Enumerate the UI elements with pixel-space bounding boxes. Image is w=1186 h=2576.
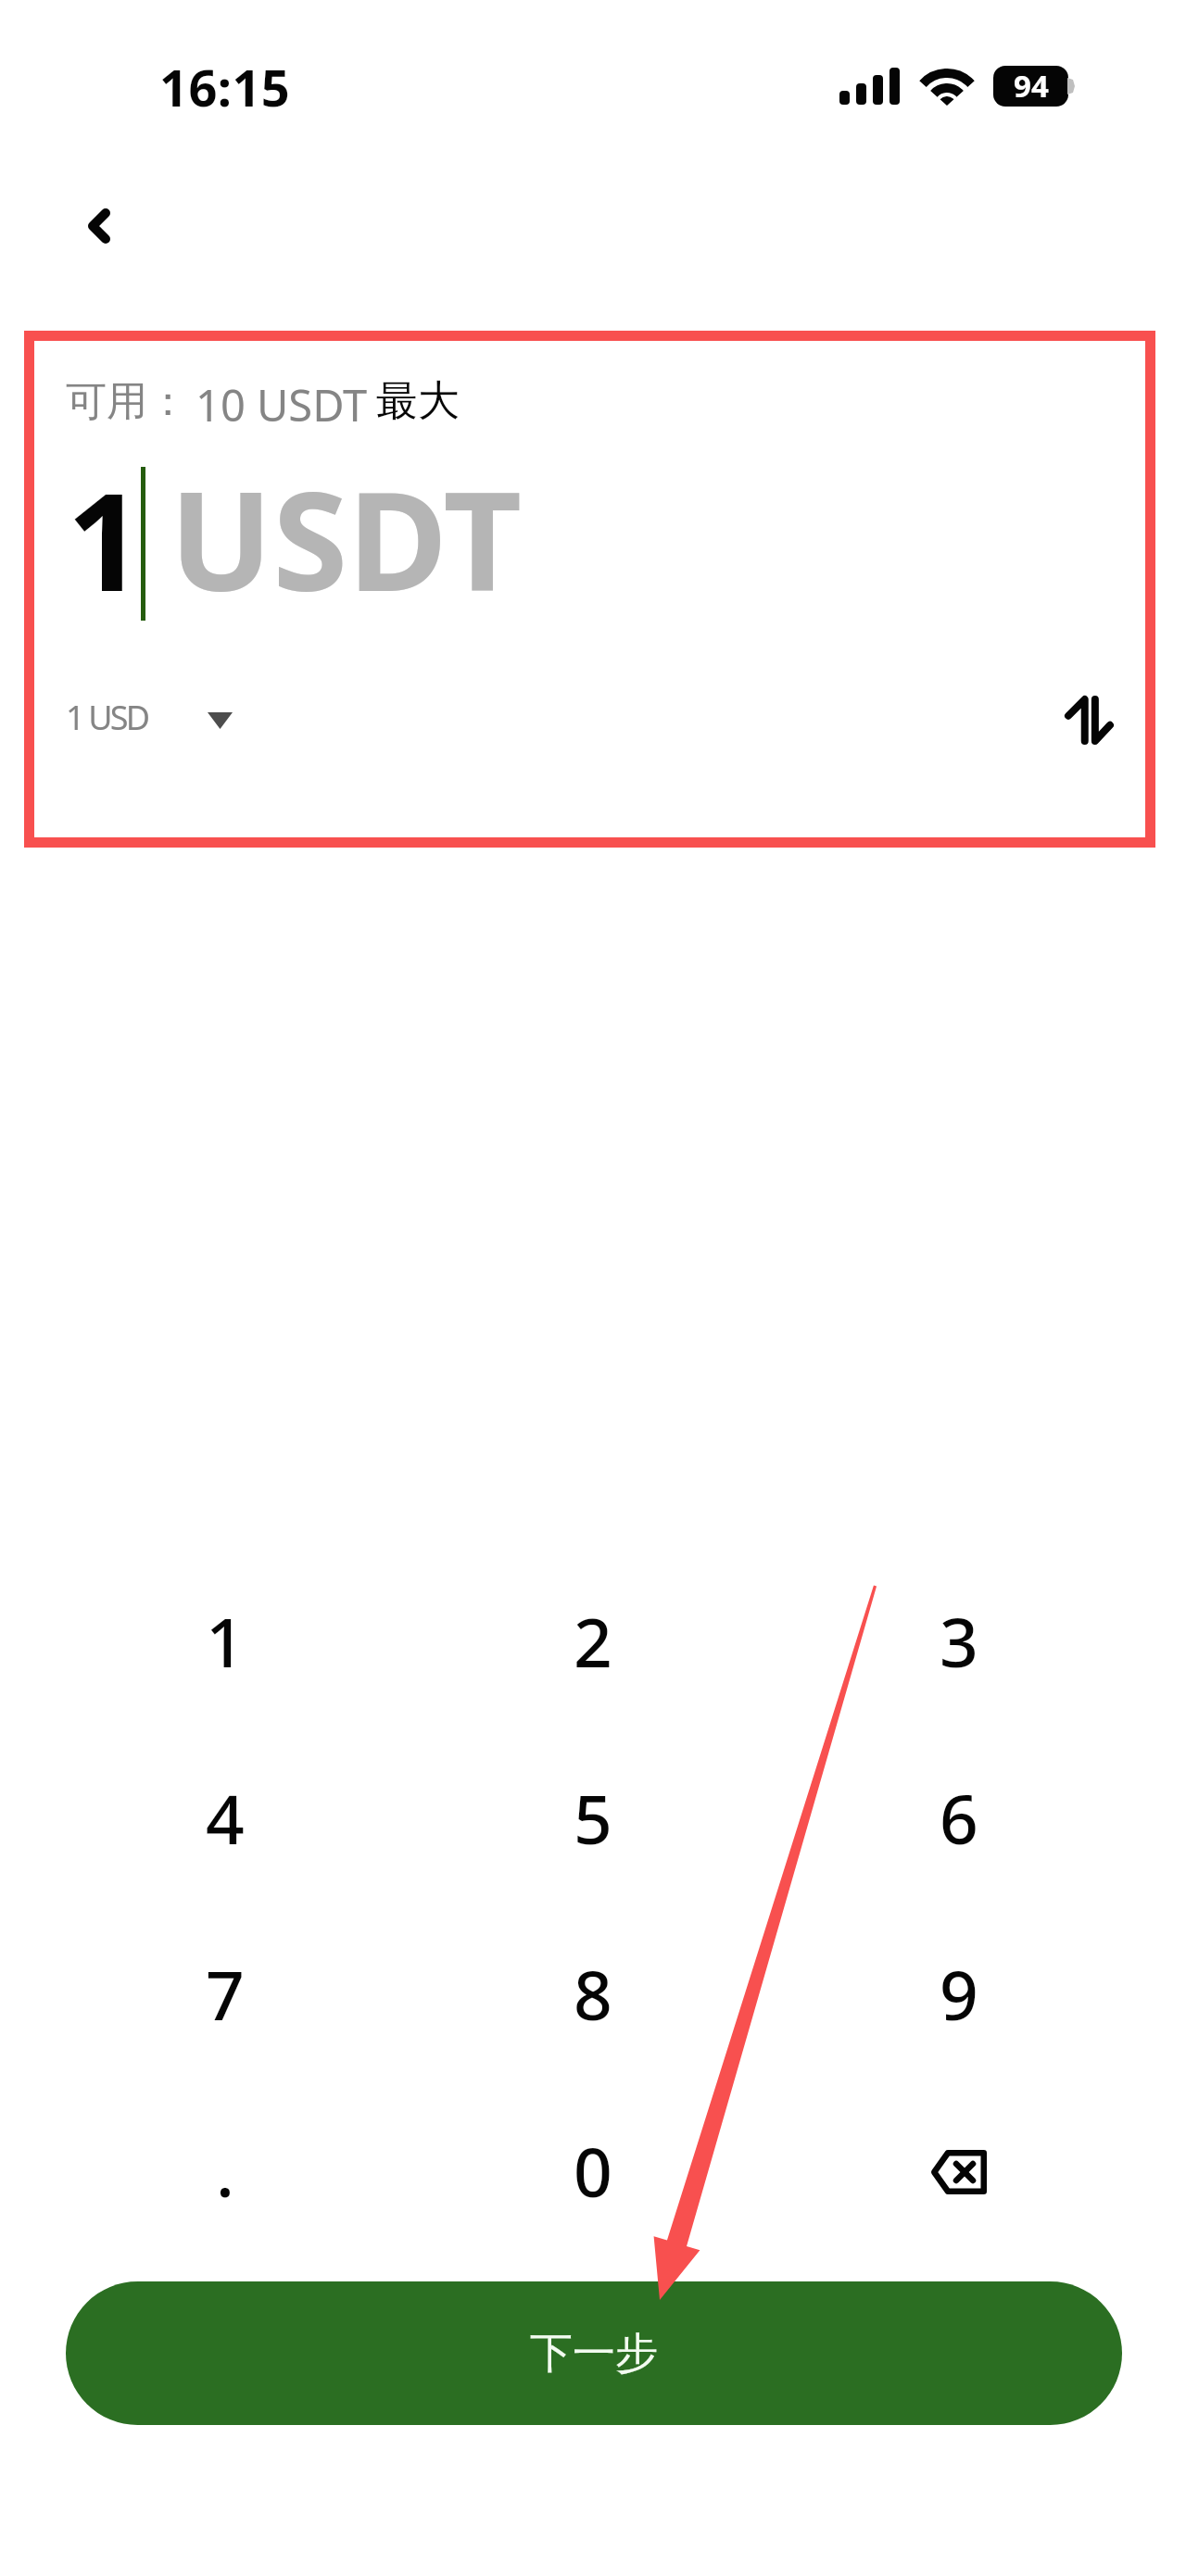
button[interactable]: 4: [42, 1731, 409, 1907]
staticText: .: [216, 2125, 234, 2217]
staticText: 7: [206, 1948, 245, 2040]
button[interactable]: 9: [776, 1907, 1142, 2083]
staticText: 8: [574, 1948, 612, 2040]
button[interactable]: Back: [52, 170, 150, 282]
staticText: 1: [67, 447, 144, 630]
button[interactable]: 8: [410, 1907, 776, 2083]
button[interactable]: .: [42, 2084, 409, 2260]
staticText: 0: [574, 2125, 612, 2217]
button[interactable]: Delete: [776, 2084, 1142, 2260]
staticText: 4: [206, 1772, 245, 1864]
button[interactable]: 1: [42, 1554, 409, 1730]
staticText: 可用：: [66, 376, 188, 427]
staticText: 10 USDT: [196, 375, 368, 434]
button[interactable]: 1 USD: [66, 695, 233, 740]
button[interactable]: 下一步: [66, 2281, 1122, 2425]
staticText: 1: [206, 1595, 245, 1687]
button[interactable]: 0: [410, 2084, 776, 2260]
button[interactable]: 7: [42, 1907, 409, 2083]
staticText: 9: [940, 1948, 978, 2040]
button[interactable]: 最大: [367, 357, 471, 434]
staticText: 6: [940, 1772, 978, 1864]
staticText: USDT: [170, 446, 523, 631]
staticText: 2: [574, 1595, 612, 1687]
button[interactable]: 5: [410, 1731, 776, 1907]
button[interactable]: 3: [776, 1554, 1142, 1730]
staticText: 3: [940, 1595, 978, 1687]
button[interactable]: Switch currency: [1046, 677, 1132, 763]
staticText: 94: [1014, 66, 1049, 106]
staticText: 最大: [376, 375, 460, 428]
staticText: 16:15: [159, 53, 291, 121]
button[interactable]: 6: [776, 1731, 1142, 1907]
staticText: 1 USD: [66, 695, 148, 740]
button[interactable]: 2: [410, 1554, 776, 1730]
staticText: 下一步: [530, 2327, 658, 2381]
staticText: 5: [574, 1772, 612, 1864]
